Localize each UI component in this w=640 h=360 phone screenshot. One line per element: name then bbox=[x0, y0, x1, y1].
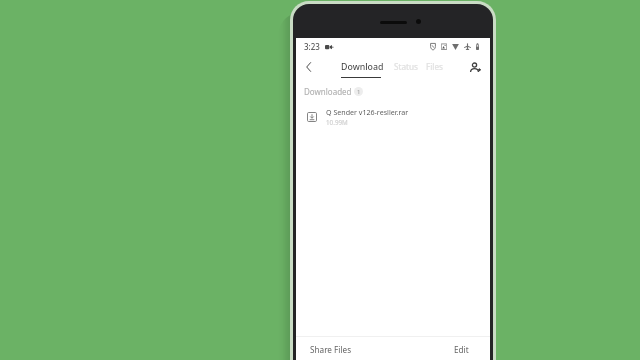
button[interactable]: Back bbox=[298, 55, 318, 79]
staticText: Share Files bbox=[310, 344, 352, 355]
staticText: Status bbox=[394, 61, 418, 72]
button[interactable]: Share Files bbox=[296, 337, 370, 360]
button[interactable]: Edit bbox=[444, 337, 478, 360]
button[interactable]: Download bbox=[336, 55, 388, 79]
staticText: 3:23 bbox=[304, 41, 320, 52]
button[interactable]: Add contact bbox=[463, 55, 485, 79]
staticText: Files bbox=[426, 61, 444, 72]
staticText: Edit bbox=[454, 344, 469, 355]
button[interactable]: Files bbox=[418, 54, 452, 78]
button[interactable]: Q Sender v126-resller.rar bbox=[296, 104, 490, 130]
staticText: Download bbox=[341, 61, 384, 73]
staticText: 1 bbox=[357, 88, 361, 96]
staticText: Q Sender v126-resller.rar bbox=[326, 107, 409, 117]
button[interactable]: Status bbox=[390, 54, 422, 78]
staticText: Downloaded bbox=[304, 86, 352, 97]
staticText: 10.99M bbox=[326, 118, 348, 127]
